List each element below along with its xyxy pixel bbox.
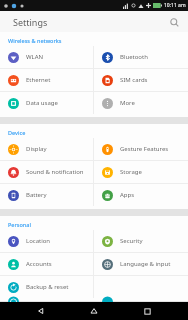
staticText: Data usage	[26, 99, 58, 107]
staticText: Device	[8, 129, 26, 136]
staticText: Location	[26, 237, 51, 245]
button[interactable]: Security	[94, 230, 188, 252]
button[interactable]: Sound & notification	[0, 161, 93, 183]
staticText: More	[120, 99, 135, 107]
button[interactable]: Ethernet	[0, 69, 93, 91]
button[interactable]: Search	[166, 14, 182, 30]
staticText: Bluetooth	[120, 53, 148, 61]
button[interactable]: SIM cards	[94, 69, 188, 91]
button[interactable]: Home	[82, 302, 106, 320]
button[interactable]: Back	[29, 302, 53, 320]
staticText: Backup & reset	[26, 283, 69, 291]
staticText: Ethernet	[26, 76, 51, 84]
staticText: Wireless & networks	[8, 37, 62, 44]
button[interactable]: Location	[0, 230, 93, 252]
button[interactable]: Data usage	[0, 92, 93, 114]
button[interactable]: Storage	[94, 161, 188, 183]
staticText: Gesture Features	[120, 145, 169, 153]
button[interactable]: More	[94, 92, 188, 114]
button[interactable]: Bluetooth	[94, 46, 188, 68]
button[interactable]: Backup & reset	[0, 276, 93, 298]
staticText: Display	[26, 145, 47, 153]
button[interactable]: Accounts	[0, 253, 93, 275]
staticText: Language & input	[120, 260, 171, 268]
staticText: 10:11 am	[164, 2, 186, 9]
staticText: SIM cards	[120, 76, 148, 84]
staticText: Security	[120, 237, 143, 245]
button[interactable]: Battery	[0, 184, 93, 206]
button[interactable]: Display	[0, 138, 93, 160]
button[interactable]: Recent apps	[135, 302, 159, 320]
staticText: Storage	[120, 168, 142, 176]
button[interactable]: Apps	[94, 184, 188, 206]
staticText: Settings	[13, 16, 48, 28]
button[interactable]: Language & input	[94, 253, 188, 275]
staticText: Personal	[8, 221, 31, 228]
staticText: Apps	[120, 191, 135, 199]
button[interactable]: Gesture Features	[94, 138, 188, 160]
staticText: Accounts	[26, 260, 52, 268]
staticText: Battery	[26, 191, 47, 199]
staticText: WLAN	[26, 53, 44, 61]
button[interactable]: WLAN	[0, 46, 93, 68]
staticText: Sound & notification	[26, 168, 84, 176]
